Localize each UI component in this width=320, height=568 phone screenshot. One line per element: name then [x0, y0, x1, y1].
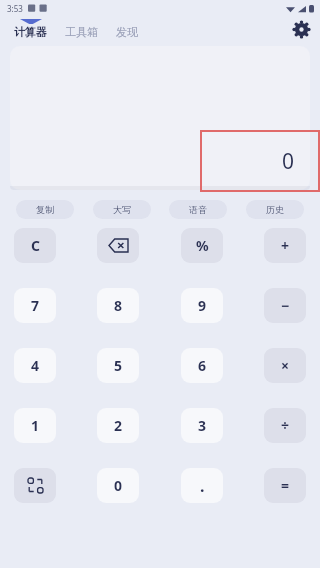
- button[interactable]: ÷: [264, 408, 306, 443]
- staticText: 8: [114, 296, 123, 315]
- staticText: 发现: [116, 25, 138, 39]
- button[interactable]: 0: [97, 468, 139, 503]
- staticText: =: [281, 476, 290, 495]
- button[interactable]: 语音: [169, 200, 227, 219]
- button[interactable]: 1: [14, 408, 56, 443]
- button[interactable]: 8: [97, 288, 139, 323]
- button[interactable]: 发现: [116, 19, 138, 39]
- staticText: +: [281, 236, 290, 255]
- staticText: 3: [198, 416, 207, 435]
- staticText: 复制: [36, 204, 54, 215]
- button[interactable]: =: [264, 468, 306, 503]
- staticText: 4: [31, 356, 40, 375]
- staticText: 1: [31, 416, 40, 435]
- staticText: 2: [114, 416, 123, 435]
- button[interactable]: 计算器: [14, 19, 47, 39]
- button[interactable]: 2: [97, 408, 139, 443]
- button[interactable]: 历史: [246, 200, 304, 219]
- staticText: .: [200, 475, 205, 497]
- staticText: 9: [198, 296, 207, 315]
- staticText: 历史: [266, 204, 284, 215]
- staticText: −: [281, 296, 290, 315]
- button[interactable]: .: [181, 468, 223, 503]
- button[interactable]: Unit conversion: [14, 468, 56, 503]
- button[interactable]: 3: [181, 408, 223, 443]
- button[interactable]: %: [181, 228, 223, 263]
- staticText: 6: [198, 356, 207, 375]
- staticText: 5: [114, 356, 123, 375]
- button[interactable]: 7: [14, 288, 56, 323]
- staticText: ×: [281, 356, 290, 375]
- button[interactable]: −: [264, 288, 306, 323]
- staticText: %: [196, 236, 209, 255]
- staticText: 工具箱: [65, 25, 98, 39]
- button[interactable]: Backspace: [97, 228, 139, 263]
- staticText: 大写: [113, 204, 131, 215]
- staticText: C: [31, 236, 40, 255]
- staticText: ÷: [281, 416, 290, 435]
- button[interactable]: C: [14, 228, 56, 263]
- button[interactable]: ×: [264, 348, 306, 383]
- button[interactable]: 9: [181, 288, 223, 323]
- staticText: 0: [281, 147, 294, 176]
- button[interactable]: 复制: [16, 200, 74, 219]
- staticText: 语音: [189, 204, 207, 215]
- staticText: 0: [114, 476, 123, 495]
- button[interactable]: 5: [97, 348, 139, 383]
- button[interactable]: Settings: [290, 18, 312, 40]
- button[interactable]: 工具箱: [65, 19, 98, 39]
- staticText: 7: [31, 296, 40, 315]
- button[interactable]: 4: [14, 348, 56, 383]
- button[interactable]: 6: [181, 348, 223, 383]
- staticText: 计算器: [14, 25, 47, 39]
- button[interactable]: +: [264, 228, 306, 263]
- staticText: 3:53: [7, 3, 23, 14]
- button[interactable]: 大写: [93, 200, 151, 219]
